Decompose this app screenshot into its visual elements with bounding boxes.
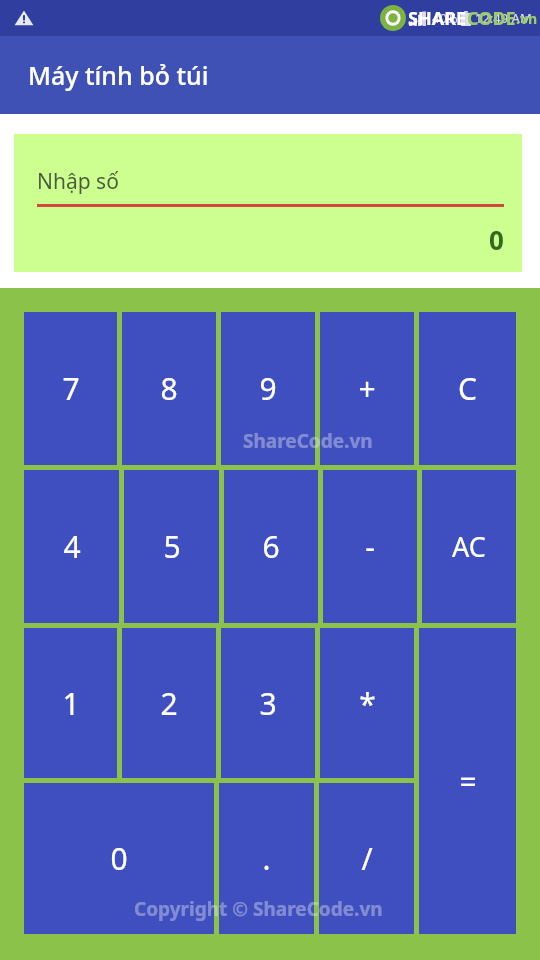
staticText: 4: [63, 526, 81, 567]
staticText: 5: [163, 526, 181, 567]
button[interactable]: 0: [24, 783, 214, 934]
button[interactable]: /: [319, 783, 414, 934]
staticText: C: [458, 368, 477, 409]
staticText: Nhập số: [37, 167, 119, 196]
staticText: 1: [62, 683, 80, 724]
button[interactable]: *: [320, 628, 414, 778]
staticText: 7: [62, 368, 80, 409]
button[interactable]: 3: [221, 628, 315, 778]
button[interactable]: 1: [24, 628, 117, 778]
button[interactable]: AC: [422, 470, 516, 623]
staticText: -: [365, 526, 375, 567]
button[interactable]: 7: [24, 312, 117, 465]
staticText: SHARE: [408, 6, 467, 31]
button[interactable]: 4: [24, 470, 119, 623]
staticText: 0: [489, 222, 504, 257]
button[interactable]: +: [320, 312, 414, 465]
staticText: 3: [259, 683, 277, 724]
staticText: 9: [259, 368, 277, 409]
staticText: 8: [160, 368, 178, 409]
staticText: Máy tính bỏ túi: [28, 58, 209, 92]
staticText: 2: [160, 683, 178, 724]
staticText: 0: [110, 838, 128, 879]
staticText: ShareCode.vn: [243, 428, 373, 454]
staticText: =: [459, 761, 477, 802]
staticText: 6: [262, 526, 280, 567]
button[interactable]: 8: [122, 312, 216, 465]
button[interactable]: 2: [122, 628, 216, 778]
button[interactable]: C: [419, 312, 516, 465]
staticText: /: [361, 838, 373, 879]
staticText: .: [262, 838, 271, 879]
staticText: 12:49 AM: [475, 9, 532, 27]
button[interactable]: Nhập số: [14, 134, 522, 272]
staticText: .vn: [516, 9, 538, 28]
button[interactable]: -: [323, 470, 417, 623]
staticText: Copyright © ShareCode.vn: [134, 896, 383, 922]
button[interactable]: =: [419, 628, 516, 934]
staticText: +: [358, 368, 376, 409]
staticText: AC: [452, 528, 486, 565]
button[interactable]: 9: [221, 312, 315, 465]
button[interactable]: .: [219, 783, 314, 934]
button[interactable]: 5: [124, 470, 219, 623]
staticText: *: [359, 683, 376, 724]
button[interactable]: 6: [224, 470, 318, 623]
staticText: 40%: [432, 9, 458, 27]
staticText: CODE: [467, 6, 516, 31]
